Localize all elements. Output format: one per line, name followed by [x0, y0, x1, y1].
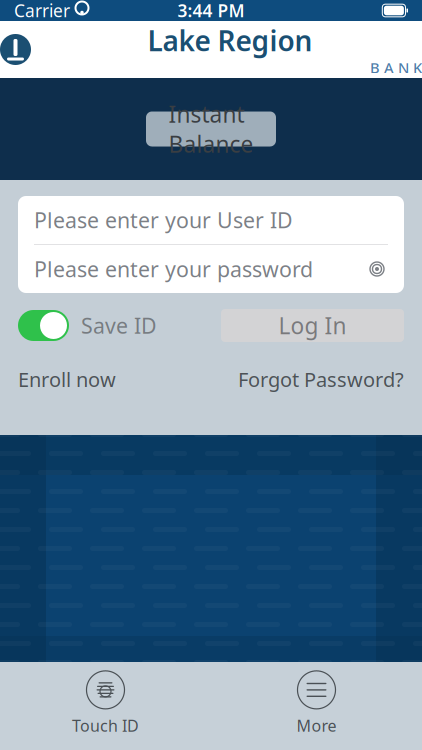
button[interactable]: Please enter your User ID	[18, 196, 404, 244]
button[interactable]: Please enter your password	[18, 245, 404, 293]
staticText: B A N K	[370, 58, 422, 77]
button[interactable]: Touch ID	[45, 670, 165, 736]
staticText: Touch ID	[72, 715, 139, 736]
staticText: Instant Balance	[168, 99, 253, 159]
staticText: Lake Region	[147, 22, 312, 59]
staticText: Save ID	[81, 311, 157, 340]
staticText: Forgot Password?	[238, 366, 404, 393]
button[interactable]: Log In	[221, 309, 404, 342]
button[interactable]: More	[256, 670, 376, 736]
button[interactable]: Forgot Password?	[238, 366, 404, 393]
staticText: Log In	[278, 310, 346, 340]
staticText: More	[296, 715, 336, 736]
staticText: 3:44 PM	[177, 0, 244, 22]
staticText: Please enter your User ID	[34, 206, 293, 234]
button[interactable]: Instant Balance	[146, 111, 276, 146]
button[interactable]: Enroll now	[18, 366, 116, 393]
staticText: Please enter your password	[34, 255, 313, 283]
button[interactable]: Save ID	[18, 310, 157, 341]
staticText: Carrier	[14, 0, 70, 22]
staticText: Enroll now	[18, 366, 116, 393]
